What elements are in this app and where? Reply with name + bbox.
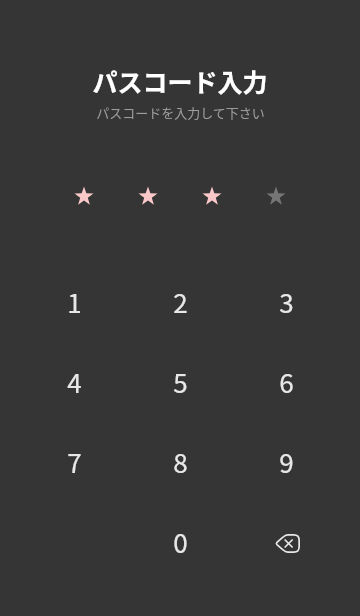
staticText: 7 (67, 443, 82, 481)
button[interactable]: Backspace (241, 506, 331, 578)
staticText: 4 (67, 363, 82, 401)
button[interactable]: 4 (29, 346, 119, 418)
staticText: 8 (173, 443, 188, 481)
staticText: パスコード入力 (92, 63, 268, 99)
button[interactable]: 1 (29, 266, 119, 338)
staticText: 6 (279, 363, 294, 401)
button[interactable]: 3 (241, 266, 331, 338)
staticText: 9 (279, 443, 294, 481)
staticText: パスコードを入力して下さい (96, 103, 265, 122)
button[interactable]: 7 (29, 426, 119, 498)
button[interactable]: 9 (241, 426, 331, 498)
staticText: 5 (173, 363, 188, 401)
button[interactable]: 6 (241, 346, 331, 418)
button[interactable]: 0 (135, 506, 225, 578)
staticText: 0 (173, 523, 188, 561)
staticText: 2 (173, 283, 188, 321)
button[interactable]: 8 (135, 426, 225, 498)
staticText: 3 (279, 283, 294, 321)
button[interactable]: 2 (135, 266, 225, 338)
button[interactable]: 5 (135, 346, 225, 418)
staticText: 1 (67, 283, 82, 321)
